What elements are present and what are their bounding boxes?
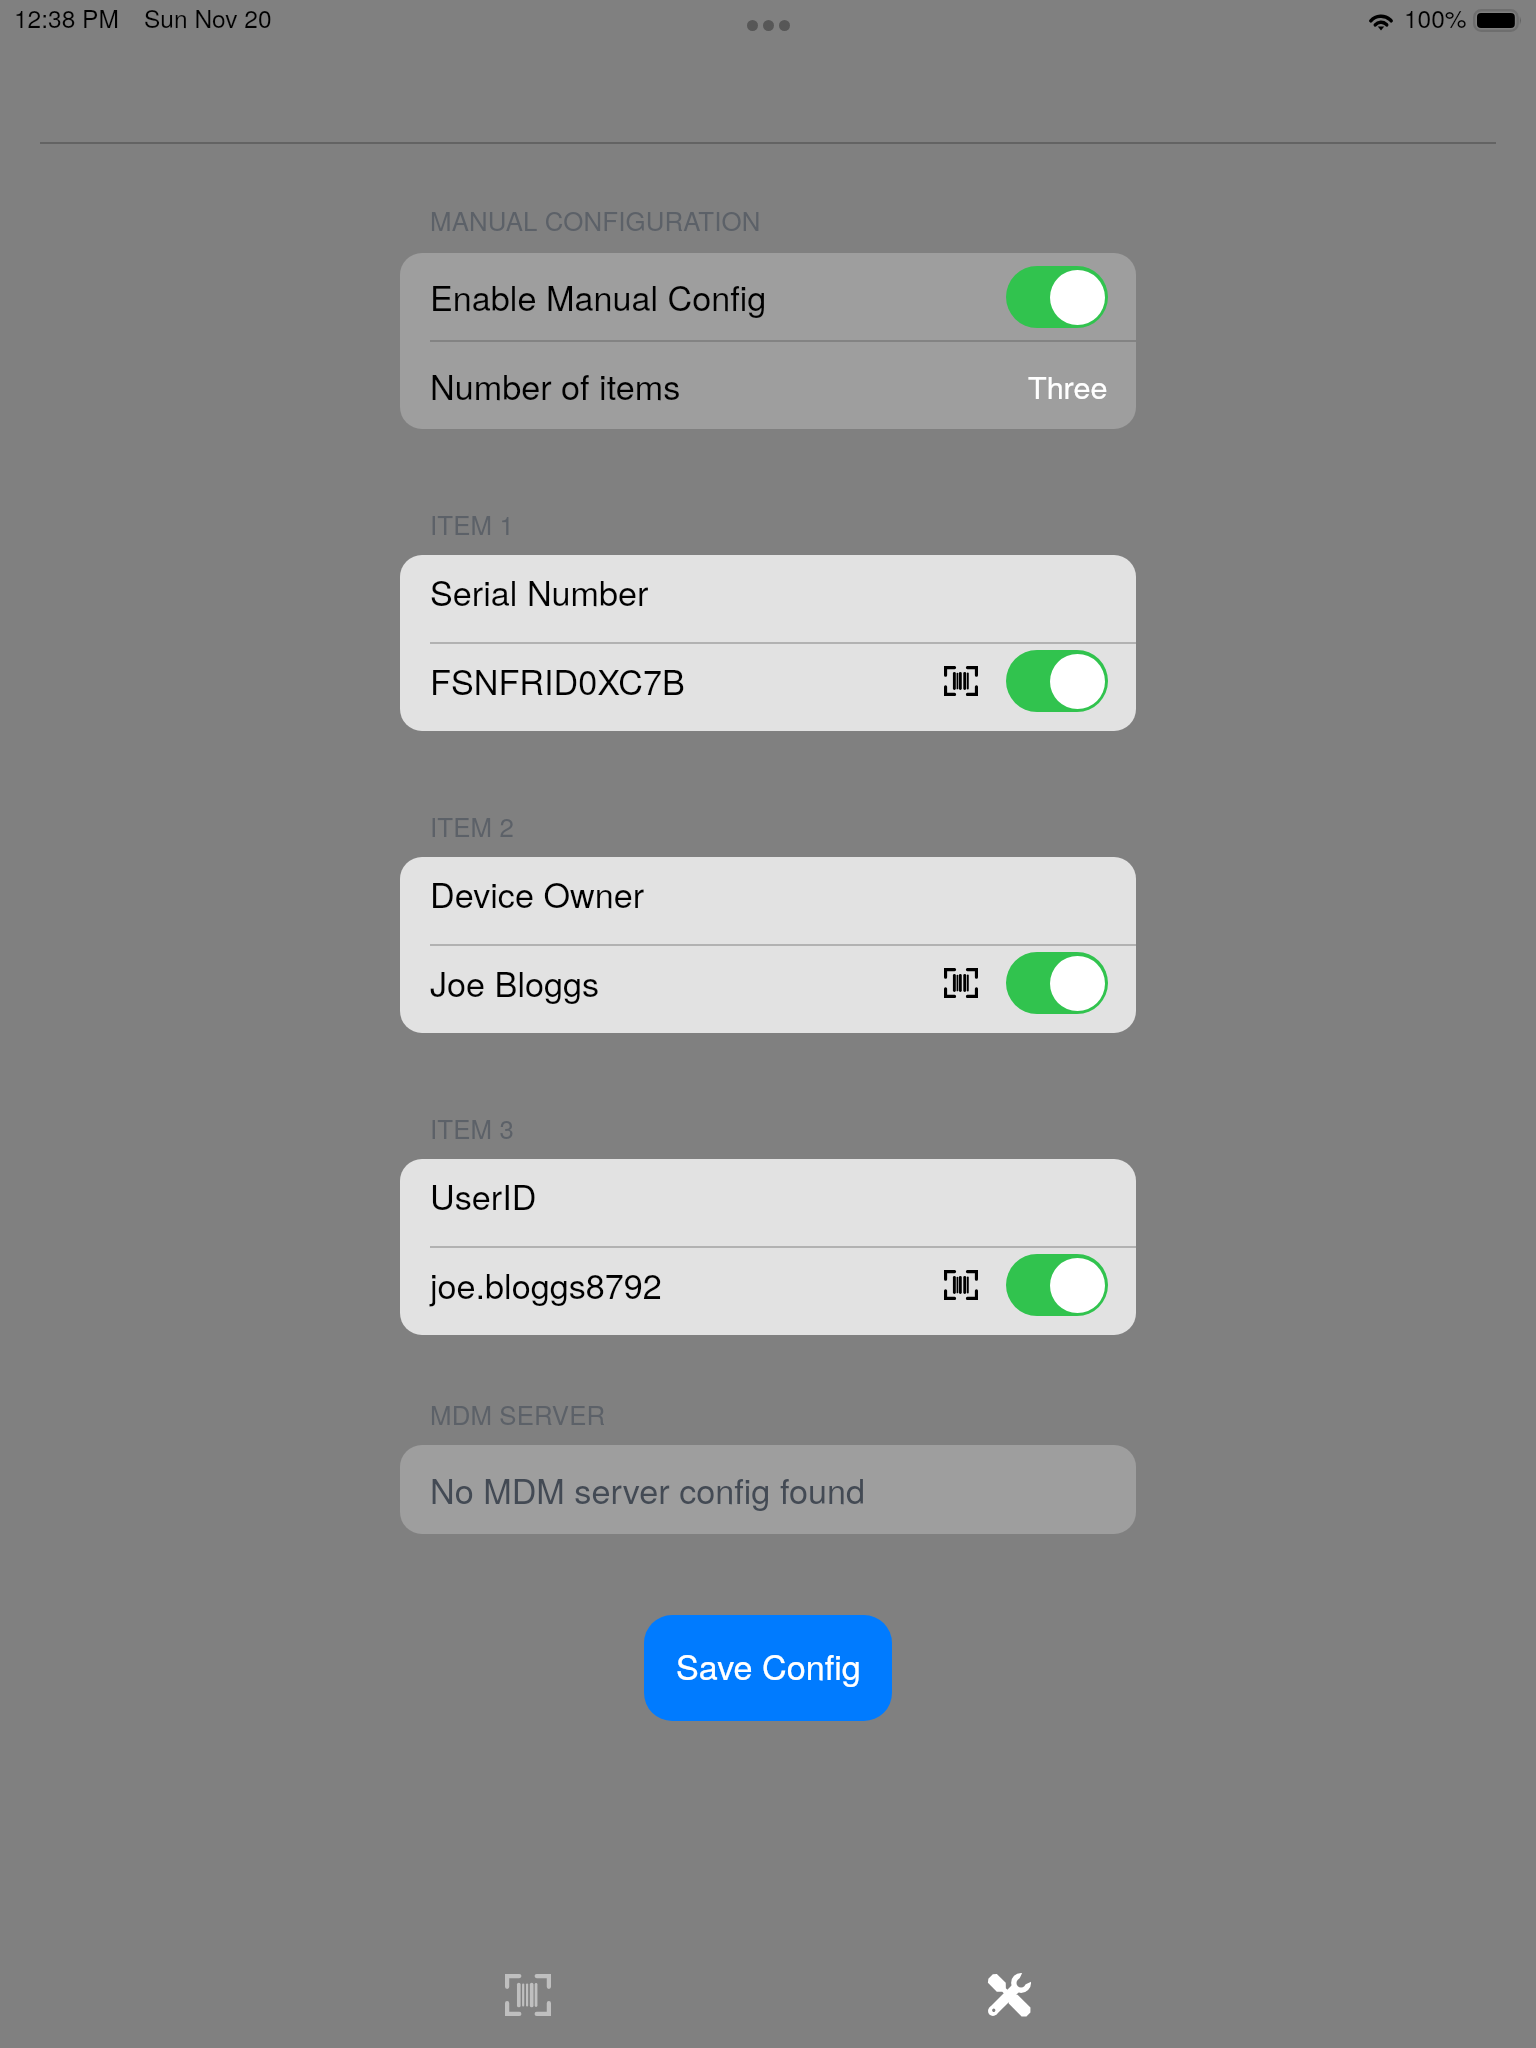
staticText: ITEM 3 bbox=[430, 1109, 515, 1146]
staticText: Device Owner bbox=[430, 869, 645, 918]
staticText: Number of items bbox=[430, 361, 681, 410]
staticText: FSNFRID0XC7B bbox=[430, 656, 685, 705]
staticText: Three bbox=[1028, 364, 1108, 408]
staticText: Save Config bbox=[676, 1641, 861, 1690]
button[interactable]: Scan bbox=[468, 1941, 588, 2048]
staticText: 100% bbox=[1404, 0, 1467, 35]
button[interactable]: Joe Bloggs bbox=[400, 946, 1136, 1033]
button[interactable]: Scan barcode bbox=[930, 1257, 992, 1313]
button[interactable]: Serial Number bbox=[400, 555, 1136, 642]
staticText: Joe Bloggs bbox=[430, 958, 600, 1007]
staticText: No MDM server config found bbox=[430, 1465, 866, 1514]
button[interactable]: Device Owner bbox=[400, 857, 1136, 944]
staticText: joe.bloggs8792 bbox=[430, 1260, 662, 1309]
staticText: 12:38 PM bbox=[14, 0, 119, 35]
button[interactable]: Settings bbox=[949, 1941, 1069, 2048]
button[interactable]: Scan barcode bbox=[930, 955, 992, 1011]
staticText: MANUAL CONFIGURATION bbox=[430, 201, 761, 238]
button[interactable]: Number of items bbox=[400, 342, 1136, 429]
button[interactable]: Scan barcode bbox=[930, 653, 992, 709]
staticText: UserID bbox=[430, 1171, 537, 1220]
button[interactable]: Enable Manual Config bbox=[400, 253, 1136, 340]
button[interactable]: Toggle bbox=[1006, 1254, 1108, 1316]
button[interactable]: FSNFRID0XC7B bbox=[400, 644, 1136, 731]
staticText: ITEM 1 bbox=[430, 505, 515, 542]
staticText: Enable Manual Config bbox=[430, 272, 767, 321]
button[interactable]: UserID bbox=[400, 1159, 1136, 1246]
staticText: MDM SERVER bbox=[430, 1395, 606, 1432]
staticText: Serial Number bbox=[430, 567, 649, 616]
staticText: Sun Nov 20 bbox=[144, 0, 272, 35]
button[interactable]: joe.bloggs8792 bbox=[400, 1248, 1136, 1335]
staticText: ITEM 2 bbox=[430, 807, 515, 844]
button[interactable]: Save Config bbox=[644, 1615, 892, 1721]
button[interactable]: Toggle bbox=[1006, 650, 1108, 712]
button[interactable]: No MDM server config found bbox=[400, 1445, 1136, 1534]
button[interactable]: Toggle bbox=[1006, 266, 1108, 328]
button[interactable]: Toggle bbox=[1006, 952, 1108, 1014]
